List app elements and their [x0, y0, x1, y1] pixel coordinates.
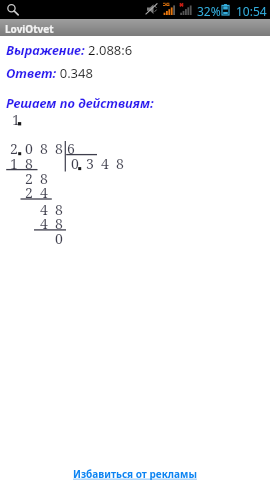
- staticText: LoviOtvet: [5, 22, 54, 36]
- staticText: Ответ: 0.348: [6, 64, 93, 82]
- staticText: 4: [101, 154, 109, 173]
- button[interactable]: Избавиться от рекламы: [0, 461, 270, 480]
- staticText: 0: [25, 139, 33, 158]
- staticText: Выражение: 2.088:6: [6, 41, 133, 59]
- staticText: 8: [116, 154, 124, 173]
- staticText: 8: [55, 214, 63, 233]
- button[interactable]: LoviOtvet: [0, 19, 270, 36]
- staticText: 2: [25, 169, 33, 188]
- staticText: Решаем по действиям:: [6, 94, 154, 112]
- staticText: 6: [67, 139, 75, 158]
- staticText: 1: [10, 154, 18, 173]
- staticText: 3: [86, 154, 94, 173]
- staticText: 8: [40, 139, 48, 158]
- staticText: 8: [25, 154, 33, 173]
- staticText: 0: [71, 154, 79, 173]
- staticText: 4: [40, 183, 48, 202]
- staticText: 2: [10, 139, 18, 158]
- staticText: 8: [40, 169, 48, 188]
- staticText: 0: [55, 229, 63, 248]
- staticText: 10:54: [236, 3, 267, 19]
- staticText: 2: [25, 183, 33, 202]
- staticText: 1: [12, 110, 20, 129]
- staticText: 4: [40, 214, 48, 233]
- staticText: 32%: [197, 3, 221, 19]
- staticText: 8: [55, 139, 63, 158]
- staticText: Избавиться от рекламы: [73, 467, 197, 480]
- staticText: 8: [55, 200, 63, 219]
- staticText: 4: [40, 200, 48, 219]
- button[interactable]: Search: [6, 3, 19, 16]
